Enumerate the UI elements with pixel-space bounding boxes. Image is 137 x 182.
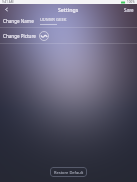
staticText: Change Name: [3, 18, 34, 24]
button[interactable]: Restore Default: [50, 167, 87, 177]
staticText: 100%: [127, 0, 135, 4]
button[interactable]: Change Picture: [0, 28, 137, 43]
button[interactable]: Save: [121, 4, 137, 15]
staticText: Settings: [58, 6, 79, 13]
button[interactable]: Change Name: [0, 15, 137, 27]
staticText: 9:41 AM: [2, 0, 14, 4]
staticText: Save: [124, 7, 134, 13]
staticText: Restore Default: [54, 170, 84, 175]
button[interactable]: Back: [0, 4, 13, 15]
staticText: UI/MVR GEEK: [40, 17, 67, 23]
staticText: Change Picture: [3, 33, 36, 39]
